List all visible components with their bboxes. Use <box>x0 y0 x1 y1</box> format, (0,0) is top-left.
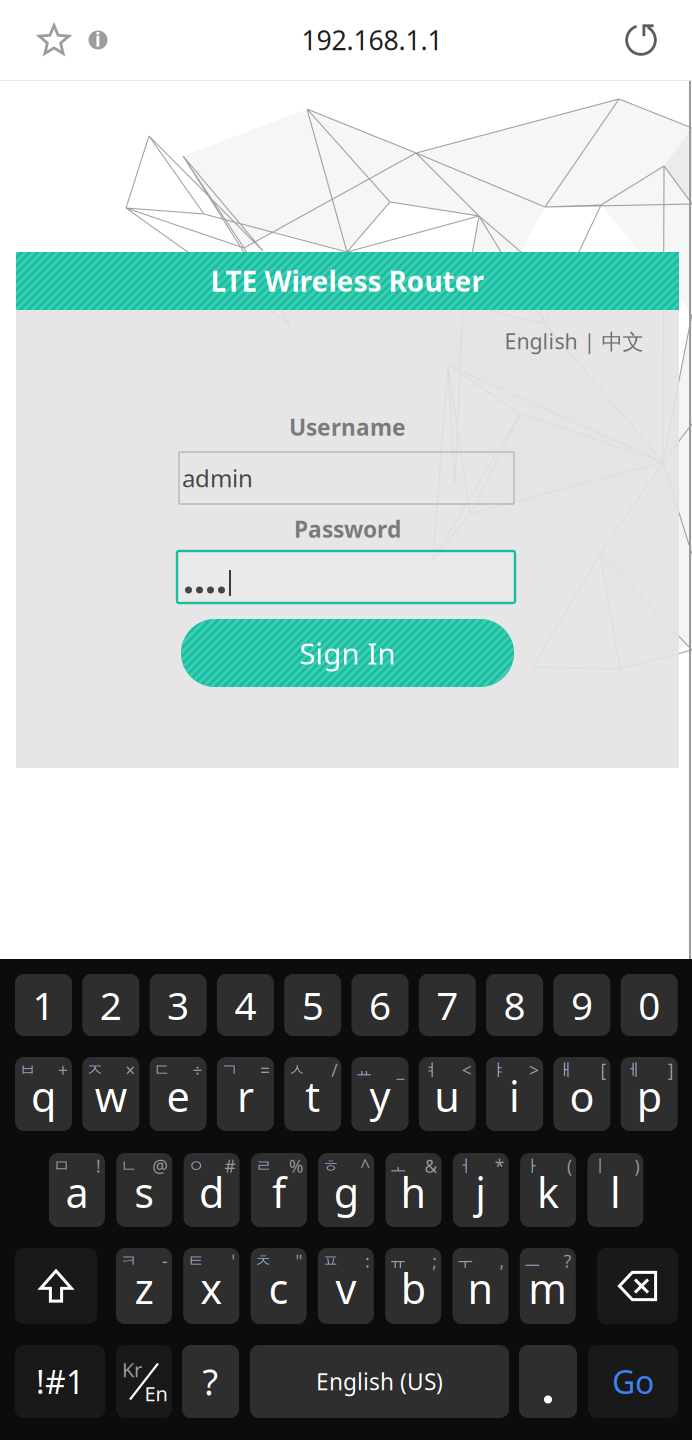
button[interactable]: 2 <box>82 974 139 1036</box>
button[interactable]: ㅏ <box>520 1153 576 1227</box>
staticText: 4 <box>234 979 256 1031</box>
button[interactable]: ㄱ <box>217 1057 274 1131</box>
button[interactable]: ㅐ <box>553 1057 610 1131</box>
button[interactable]: ㅈ <box>82 1057 139 1131</box>
staticText: e <box>167 1069 190 1123</box>
button[interactable]: ㅁ <box>49 1153 105 1227</box>
button[interactable]: ㅎ <box>318 1153 374 1227</box>
staticText: = <box>260 1058 270 1081</box>
staticText: ㄷ <box>154 1059 171 1081</box>
staticText: ㅕ <box>423 1059 440 1081</box>
staticText: > <box>529 1058 539 1081</box>
staticText: & <box>424 1154 437 1177</box>
staticText: w <box>95 1069 127 1123</box>
staticText: ㅅ <box>288 1059 305 1081</box>
button[interactable]: 0 <box>621 974 678 1036</box>
staticText: m <box>528 1261 567 1315</box>
button[interactable]: ㅓ <box>453 1153 509 1227</box>
staticText: ÷ <box>193 1058 203 1081</box>
staticText: f <box>272 1165 286 1219</box>
staticText: o <box>569 1069 594 1123</box>
staticText: 1 <box>32 979 54 1031</box>
button[interactable]: 9 <box>553 974 610 1036</box>
staticText: n <box>467 1261 493 1315</box>
staticText: ㅡ <box>524 1250 541 1272</box>
button[interactable]: ㅊ <box>251 1248 307 1324</box>
button[interactable]: ㅕ <box>419 1057 476 1131</box>
staticText: ; <box>432 1249 437 1272</box>
button[interactable]: ㅅ <box>284 1057 341 1131</box>
button[interactable]: ? <box>182 1345 239 1418</box>
button[interactable]: ㅛ <box>351 1057 408 1131</box>
button[interactable]: ㅣ <box>587 1153 643 1227</box>
button[interactable]: Switch language <box>116 1345 172 1418</box>
button[interactable]: Shift <box>15 1248 97 1324</box>
staticText: j <box>475 1165 486 1219</box>
button[interactable]: 4 <box>217 974 274 1036</box>
staticText: g <box>334 1165 359 1219</box>
button[interactable]: ㅜ <box>452 1248 508 1324</box>
button[interactable]: 8 <box>486 974 543 1036</box>
staticText: r <box>237 1069 254 1123</box>
staticText: q <box>31 1069 56 1123</box>
staticText: 2 <box>100 979 122 1031</box>
button[interactable]: 1 <box>15 974 72 1036</box>
staticText: z <box>134 1261 153 1315</box>
staticText: _ <box>396 1058 404 1081</box>
staticText: i <box>95 27 101 52</box>
staticText: ㅇ <box>188 1155 205 1177</box>
staticText: i <box>509 1069 520 1123</box>
staticText: ㅋ <box>120 1250 137 1272</box>
staticText: ㅐ <box>557 1059 574 1081</box>
button[interactable]: ㅗ <box>385 1153 441 1227</box>
staticText: ) <box>634 1154 639 1177</box>
button[interactable]: ㅑ <box>486 1057 543 1131</box>
staticText: ㄴ <box>120 1155 137 1177</box>
staticText: Sign In <box>299 633 395 672</box>
button[interactable]: ㅔ <box>621 1057 678 1131</box>
staticText: c <box>269 1261 289 1315</box>
staticText: , <box>499 1249 504 1272</box>
staticText: ㅎ <box>322 1155 339 1177</box>
button[interactable]: ㅌ <box>183 1248 239 1324</box>
staticText: English (US) <box>316 1366 443 1396</box>
button[interactable]: Page info <box>86 9 120 71</box>
button[interactable]: Go <box>588 1345 678 1418</box>
button[interactable]: English | 中文 <box>466 326 666 356</box>
staticText: ㅗ <box>389 1155 406 1177</box>
button[interactable]: Period <box>519 1345 577 1418</box>
staticText: ㅜ <box>456 1250 473 1272</box>
button[interactable]: ㅇ <box>184 1153 240 1227</box>
button[interactable]: ㅠ <box>385 1248 441 1324</box>
button[interactable]: English (US) <box>250 1345 509 1418</box>
button[interactable]: 7 <box>419 974 476 1036</box>
staticText: b <box>401 1261 426 1315</box>
button[interactable]: ㅋ <box>116 1248 172 1324</box>
button[interactable]: 6 <box>351 974 408 1036</box>
button[interactable]: ㄷ <box>150 1057 207 1131</box>
staticText: Username <box>289 412 406 442</box>
staticText: ㅍ <box>322 1250 339 1272</box>
button[interactable]: ㅂ <box>15 1057 72 1131</box>
staticText: Go <box>612 1360 654 1403</box>
staticText: * <box>495 1154 505 1177</box>
staticText: " <box>296 1249 303 1272</box>
button[interactable]: Sign In <box>181 619 514 687</box>
staticText: ㅈ <box>86 1059 103 1081</box>
button[interactable]: 3 <box>150 974 207 1036</box>
button[interactable]: Reload <box>630 9 692 71</box>
staticText: ㅑ <box>490 1059 507 1081</box>
staticText: - <box>162 1249 168 1272</box>
button[interactable]: !#1 <box>15 1345 105 1418</box>
button[interactable]: Bookmark <box>22 9 86 71</box>
button[interactable]: 5 <box>284 974 341 1036</box>
staticText: t <box>305 1069 320 1123</box>
staticText: 192.168.1.1 <box>301 22 442 58</box>
staticText: % <box>289 1154 303 1177</box>
button[interactable]: Backspace <box>597 1248 678 1324</box>
button[interactable]: ㄹ <box>251 1153 307 1227</box>
staticText: ' <box>231 1249 235 1272</box>
button[interactable]: ㅡ <box>520 1248 576 1324</box>
button[interactable]: ㅍ <box>318 1248 374 1324</box>
button[interactable]: ㄴ <box>116 1153 172 1227</box>
